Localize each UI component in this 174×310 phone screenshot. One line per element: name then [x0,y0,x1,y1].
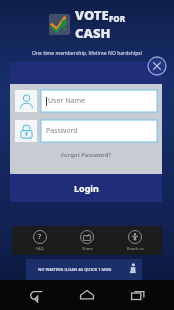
staticText: FAQ [36,246,44,251]
staticText: Reach us [127,246,144,251]
button[interactable]: Login [10,174,162,202]
button[interactable]: Forgot Password? [15,142,157,168]
button[interactable]: Home [72,280,102,310]
staticText: ? [38,232,42,242]
staticText: Forgot Password? [61,151,111,159]
staticText: Password [46,126,78,136]
button[interactable]: Close [147,56,167,76]
button[interactable]: User Name [15,90,157,112]
button[interactable]: Password [15,120,157,142]
staticText: NO WAITING (LOAN AS QUICK 1 MIN) [38,267,112,272]
button[interactable]: Share [67,230,107,251]
staticText: Share [82,246,93,251]
staticText: User Name [48,96,85,106]
staticText: FOR [109,13,126,24]
staticText: CASH [75,24,111,42]
staticText: One time membership, lifetime NO hardshi… [32,50,143,57]
button[interactable]: Recent apps [123,280,153,310]
staticText: Login [74,182,99,194]
staticText: ₹ [61,17,69,33]
button[interactable]: Reach us [115,230,155,251]
button[interactable]: ? [20,230,60,251]
staticText: VOTE [75,6,109,24]
button[interactable]: Back [21,280,51,310]
